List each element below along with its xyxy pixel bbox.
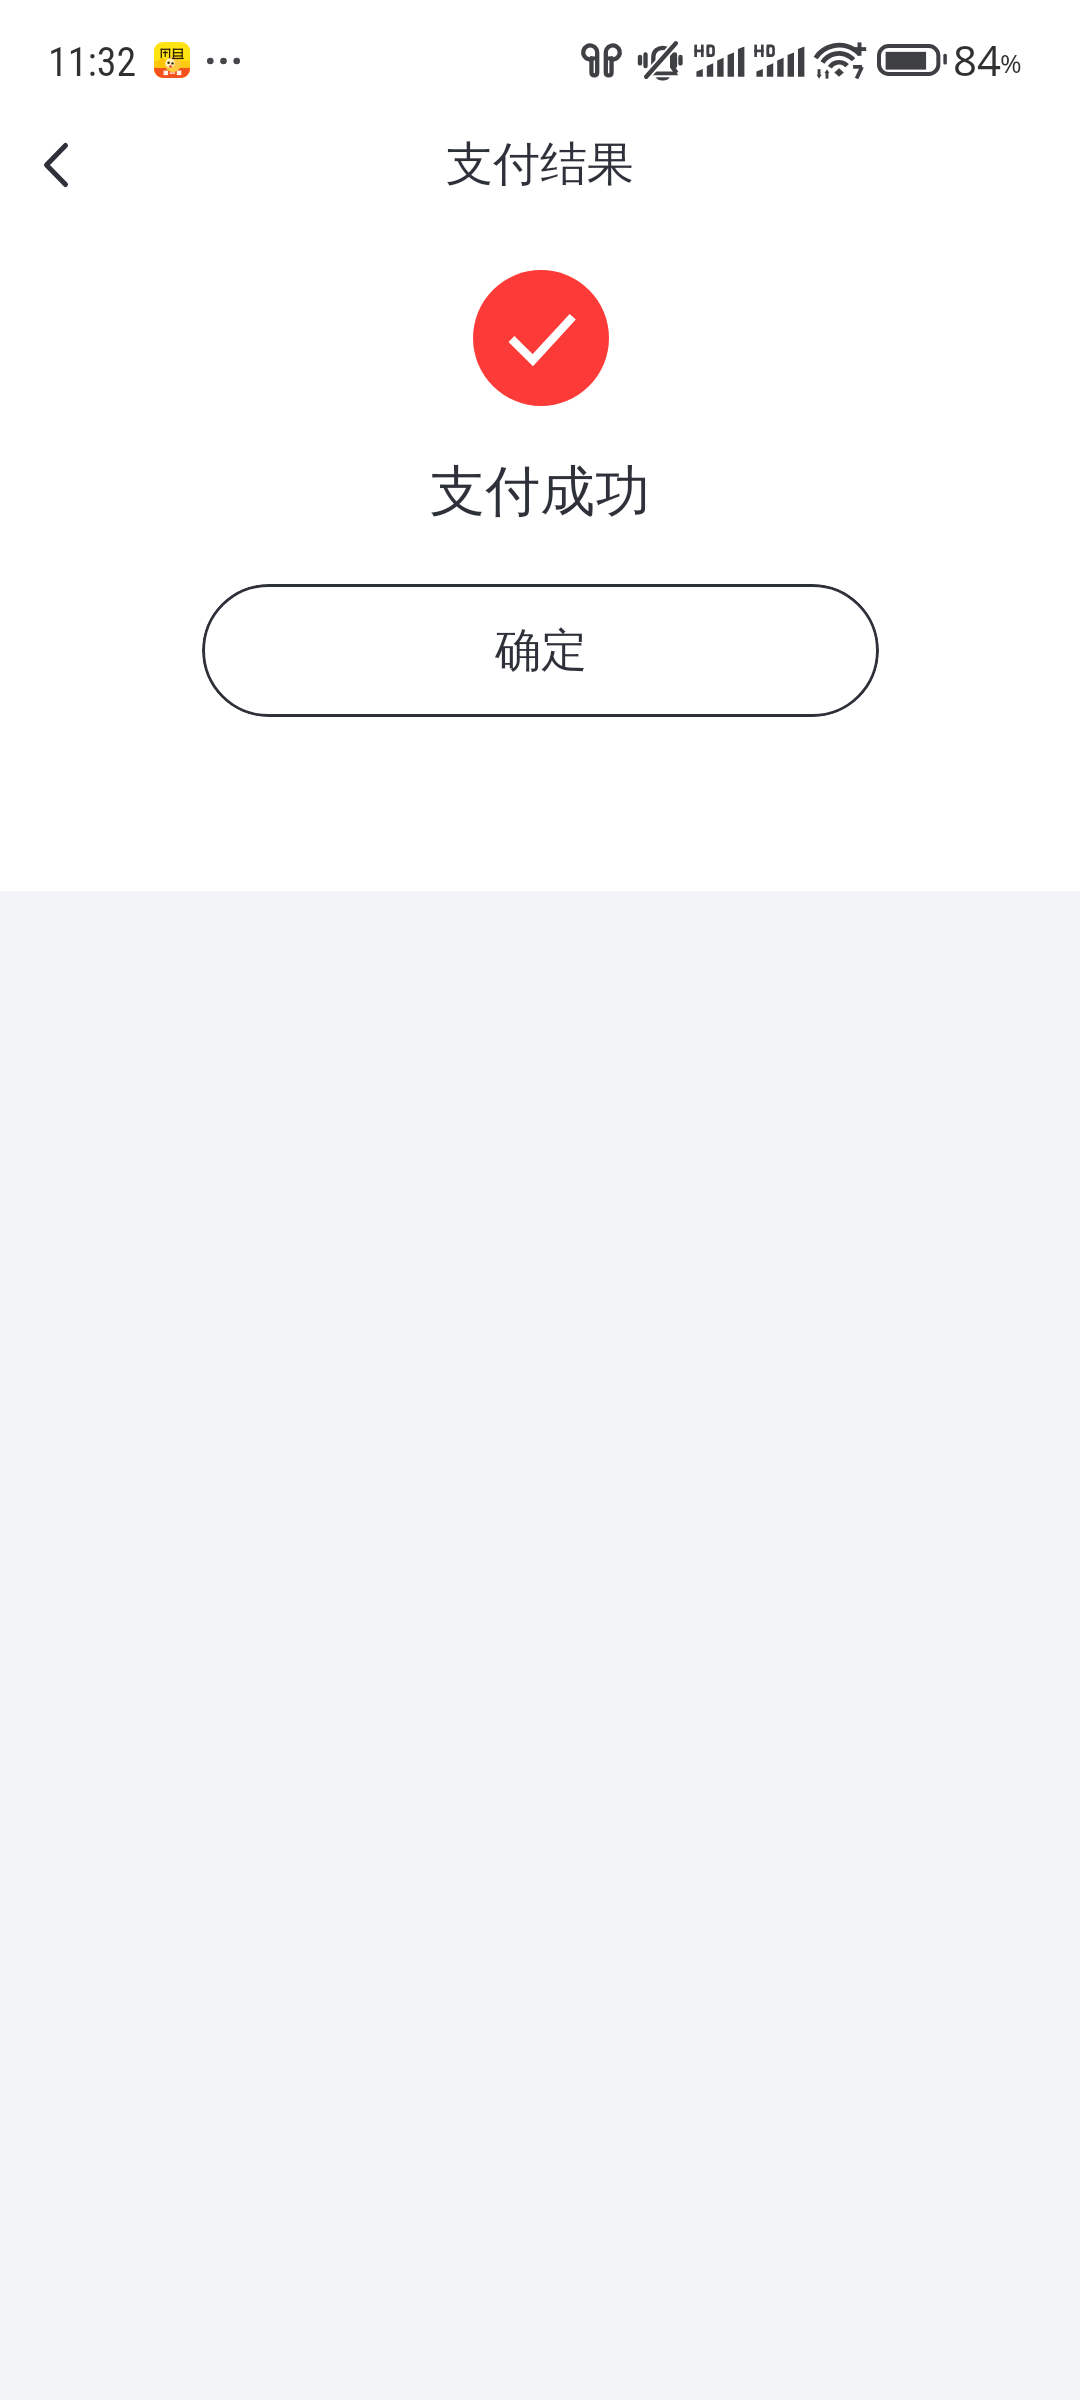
staticText: 支付成功 xyxy=(0,457,1080,526)
button[interactable]: 确定 xyxy=(202,584,879,717)
staticText: % xyxy=(1000,45,1022,80)
staticText: 支付结果 xyxy=(446,135,634,194)
button[interactable]: 返回 xyxy=(12,123,100,211)
staticText: 确定 xyxy=(495,622,587,680)
staticText: 84 xyxy=(953,31,1002,88)
staticText: 11:32 xyxy=(48,39,137,86)
